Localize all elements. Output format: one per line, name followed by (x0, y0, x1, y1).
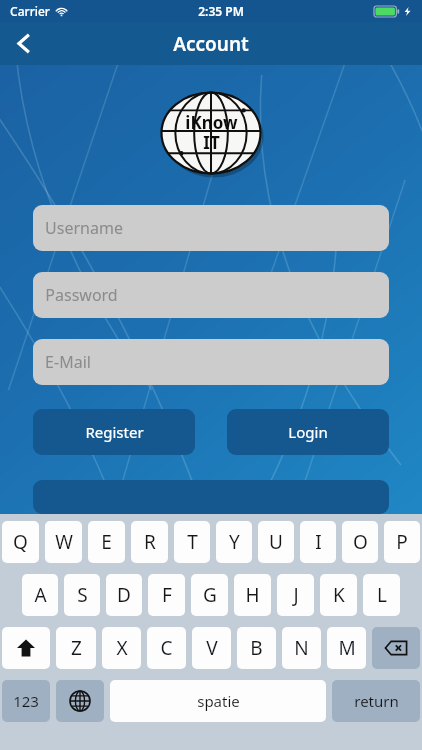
button[interactable]: R (131, 521, 168, 563)
button[interactable]: F (148, 574, 185, 616)
staticText: N (294, 635, 309, 661)
staticText: iKnow (185, 111, 238, 134)
staticText: L (377, 582, 387, 608)
button[interactable]: Backspace (372, 627, 420, 669)
staticText: Z (71, 635, 82, 661)
button[interactable]: N (282, 627, 321, 669)
button[interactable]: H (234, 574, 271, 616)
button[interactable] (33, 480, 389, 514)
button[interactable]: return (332, 680, 420, 722)
staticText: D (117, 582, 131, 608)
staticText: B (250, 635, 263, 661)
staticText: X (116, 635, 128, 661)
button[interactable]: O (342, 521, 378, 563)
staticText: F (162, 582, 172, 608)
staticText: W (55, 529, 73, 555)
button[interactable]: Back (0, 22, 46, 65)
button[interactable]: Username (33, 205, 389, 251)
button[interactable]: K (320, 574, 357, 616)
button[interactable]: D (106, 574, 142, 616)
staticText: Carrier (10, 3, 50, 19)
staticText: 2:35 PM (198, 3, 244, 19)
button[interactable]: Shift (2, 627, 50, 669)
staticText: H (245, 582, 260, 608)
staticText: Login (288, 422, 328, 442)
staticText: P (396, 529, 408, 555)
staticText: M (338, 635, 356, 661)
button[interactable]: X (102, 627, 141, 669)
staticText: I (315, 529, 322, 555)
button[interactable]: spatie (110, 680, 326, 722)
staticText: J (293, 582, 299, 608)
staticText: spatie (197, 691, 240, 711)
button[interactable]: W (45, 521, 82, 563)
staticText: K (333, 582, 345, 608)
button[interactable]: V (192, 627, 231, 669)
button[interactable]: P (384, 521, 420, 563)
staticText: Q (13, 529, 28, 555)
staticText: Register (85, 422, 144, 442)
staticText: S (77, 582, 88, 608)
staticText: IT (203, 131, 220, 154)
staticText: T (187, 529, 198, 555)
button[interactable]: U (258, 521, 294, 563)
button[interactable]: Password (33, 272, 389, 318)
button[interactable]: Register (33, 409, 195, 455)
staticText: V (206, 635, 218, 661)
staticText: G (203, 582, 217, 608)
button[interactable]: C (147, 627, 186, 669)
button[interactable]: E (88, 521, 125, 563)
button[interactable]: Z (56, 627, 96, 669)
button[interactable]: T (174, 521, 210, 563)
button[interactable]: 123 (2, 680, 50, 722)
button[interactable]: J (277, 574, 314, 616)
staticText: A (34, 582, 47, 608)
button[interactable]: I (300, 521, 336, 563)
button[interactable]: L (363, 574, 400, 616)
button[interactable]: G (191, 574, 228, 616)
button[interactable]: S (64, 574, 100, 616)
staticText: C (160, 635, 173, 661)
staticText: Y (229, 529, 240, 555)
button[interactable]: Change keyboard (56, 680, 104, 722)
button[interactable]: E-Mail (33, 339, 389, 385)
button[interactable]: M (327, 627, 366, 669)
staticText: 123 (13, 691, 39, 711)
staticText: O (353, 529, 368, 555)
staticText: Account (173, 31, 249, 57)
button[interactable]: Q (2, 521, 39, 563)
button[interactable]: Y (216, 521, 252, 563)
button[interactable]: B (237, 627, 276, 669)
button[interactable]: Login (227, 409, 389, 455)
staticText: R (144, 529, 156, 555)
staticText: U (269, 529, 283, 555)
staticText: Username (45, 217, 123, 239)
staticText: E-Mail (45, 351, 91, 373)
staticText: E (101, 529, 112, 555)
staticText: Password (45, 284, 118, 306)
staticText: return (354, 691, 399, 711)
button[interactable]: A (22, 574, 58, 616)
